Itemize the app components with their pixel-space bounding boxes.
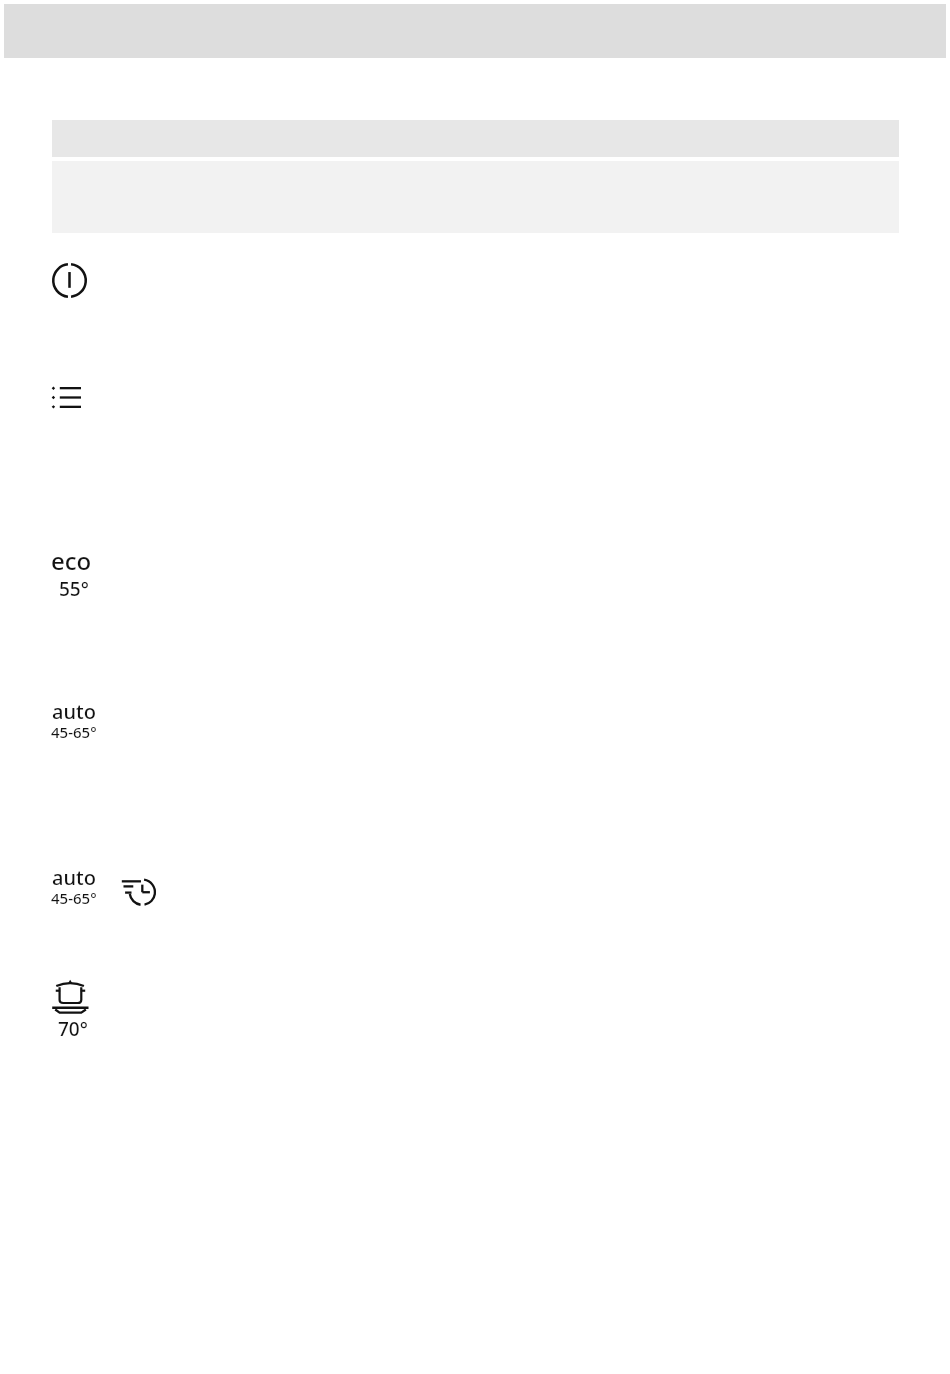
staticText: 70° [58,1016,88,1042]
button[interactable]: Programs [52,387,81,408]
button[interactable]: auto [46,864,100,912]
button[interactable]: Quick wash [121,879,156,906]
button[interactable]: Intensive [51,979,89,1015]
staticText: eco [51,544,92,577]
staticText: auto [52,698,96,725]
button[interactable]: auto [46,698,100,746]
staticText: 55° [59,576,89,602]
staticText: 45-65° [51,722,97,742]
button[interactable]: Power [52,263,87,298]
staticText: auto [52,864,96,891]
button[interactable]: eco [46,544,96,600]
staticText: 45-65° [51,888,97,908]
